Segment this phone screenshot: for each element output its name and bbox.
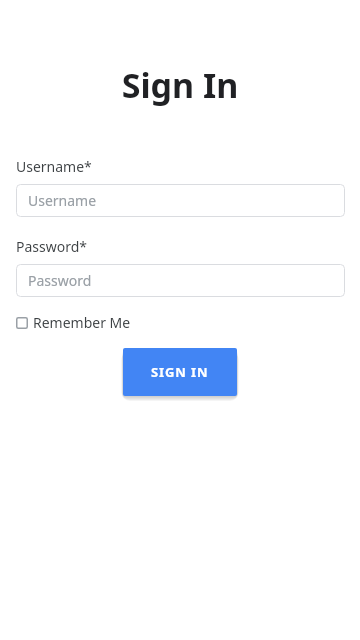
staticText: Username (28, 191, 97, 210)
staticText: Password* (16, 237, 360, 256)
staticText: SIGN IN (151, 363, 209, 381)
button[interactable]: Remember Me (16, 313, 131, 332)
staticText: Remember Me (33, 313, 131, 332)
staticText: Sign In (0, 62, 360, 108)
button[interactable]: Sign In (123, 348, 237, 396)
button[interactable]: Username (16, 184, 345, 217)
button[interactable]: Password (16, 264, 345, 297)
staticText: Password (28, 271, 92, 290)
staticText: Username* (16, 157, 360, 176)
